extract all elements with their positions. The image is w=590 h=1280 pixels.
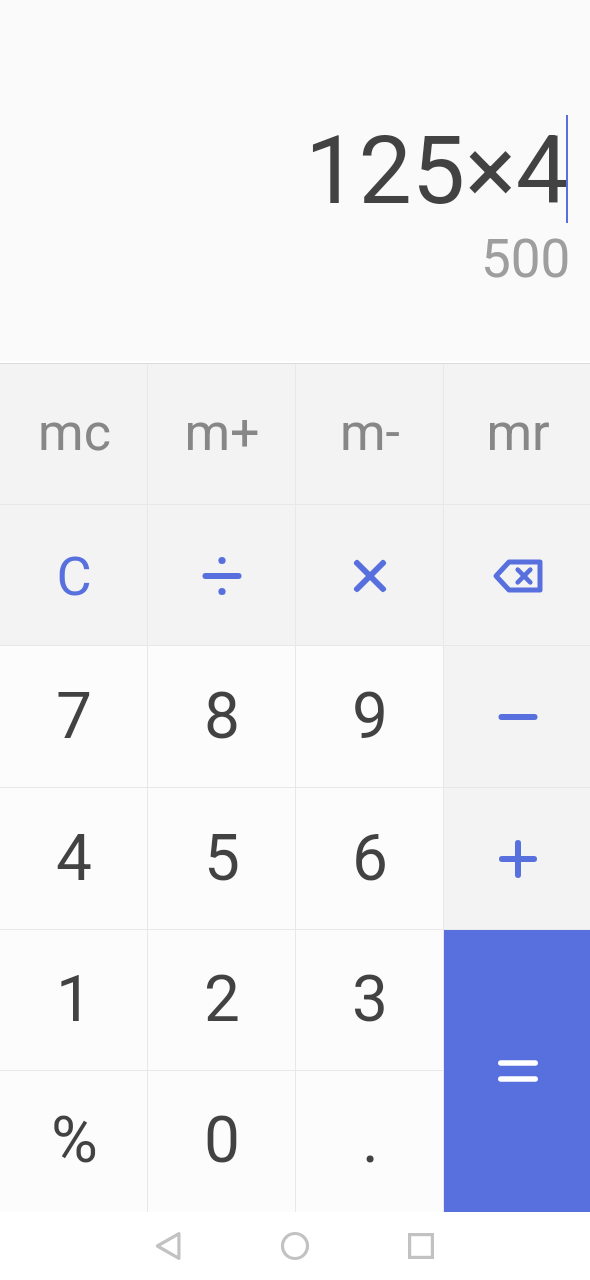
button[interactable]: m-	[296, 364, 444, 505]
button[interactable]: Back	[141, 1218, 197, 1274]
button[interactable]: 4	[0, 788, 148, 930]
button[interactable]: 3	[296, 930, 444, 1071]
staticText: %	[51, 1103, 98, 1178]
button[interactable]: mc	[0, 364, 148, 505]
button[interactable]: %	[0, 1071, 148, 1212]
staticText: mr	[486, 402, 550, 463]
staticText: 8	[204, 679, 240, 754]
staticText: 500	[481, 228, 571, 290]
button[interactable]: Backspace	[444, 505, 590, 646]
button[interactable]: Divide	[148, 505, 296, 646]
staticText: 9	[352, 679, 388, 754]
staticText: 3	[352, 962, 388, 1037]
button[interactable]: 6	[296, 788, 444, 930]
button[interactable]: mr	[444, 364, 590, 505]
staticText: 1	[56, 962, 92, 1037]
button[interactable]: Minus	[444, 646, 590, 788]
button[interactable]: 8	[148, 646, 296, 788]
button[interactable]: Plus	[444, 788, 590, 930]
button[interactable]: Equals	[444, 930, 590, 1212]
staticText: 2	[204, 962, 240, 1037]
staticText: 5	[204, 821, 240, 896]
button[interactable]: m+	[148, 364, 296, 505]
button[interactable]: Recent apps	[393, 1218, 449, 1274]
staticText: m-	[340, 402, 400, 463]
button[interactable]: 7	[0, 646, 148, 788]
button[interactable]: Home	[267, 1218, 323, 1274]
button[interactable]: 1	[0, 930, 148, 1071]
button[interactable]: Multiply	[296, 505, 444, 646]
staticText: 6	[352, 821, 388, 896]
button[interactable]: 5	[148, 788, 296, 930]
staticText: .	[362, 1103, 379, 1178]
button[interactable]: .	[296, 1071, 444, 1212]
staticText: 125×4	[305, 115, 570, 226]
staticText: m+	[184, 402, 260, 463]
staticText: C	[56, 545, 92, 608]
button[interactable]: 2	[148, 930, 296, 1071]
staticText: 4	[56, 821, 92, 896]
staticText: mc	[38, 402, 111, 463]
button[interactable]: 0	[148, 1071, 296, 1212]
button[interactable]: C	[0, 505, 148, 646]
button[interactable]: 9	[296, 646, 444, 788]
staticText: 0	[204, 1103, 240, 1178]
staticText: 7	[56, 679, 92, 754]
